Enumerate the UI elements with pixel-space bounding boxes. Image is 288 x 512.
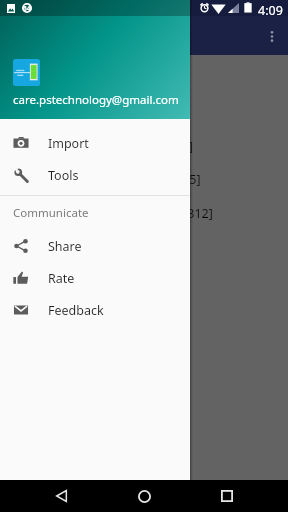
button[interactable]: Import bbox=[0, 127, 190, 159]
staticText: Tools bbox=[48, 167, 79, 184]
button[interactable]: Recents bbox=[211, 480, 243, 512]
staticText: 4:09 bbox=[258, 2, 283, 18]
staticText: Import bbox=[48, 135, 89, 152]
button[interactable]: Share bbox=[0, 230, 190, 262]
button[interactable]: Rate bbox=[0, 262, 190, 294]
button[interactable]: Feedback bbox=[0, 294, 190, 326]
staticText: Feedback bbox=[48, 302, 104, 319]
staticText: Temperature [312] bbox=[101, 205, 213, 222]
button[interactable]: Tools bbox=[0, 159, 190, 191]
staticText: Share bbox=[48, 238, 82, 255]
staticText: Battery level [78] bbox=[88, 138, 193, 155]
staticText: Communicate bbox=[13, 205, 89, 221]
button[interactable]: More options bbox=[259, 23, 285, 49]
staticText: care.pstechnology@gmail.com bbox=[13, 92, 179, 108]
button[interactable]: Back bbox=[45, 480, 77, 512]
staticText: 64 bbox=[23, 4, 31, 13]
staticText: Voltage [4105] bbox=[113, 171, 201, 188]
staticText: Rate bbox=[48, 270, 75, 287]
button[interactable]: Home bbox=[128, 480, 160, 512]
